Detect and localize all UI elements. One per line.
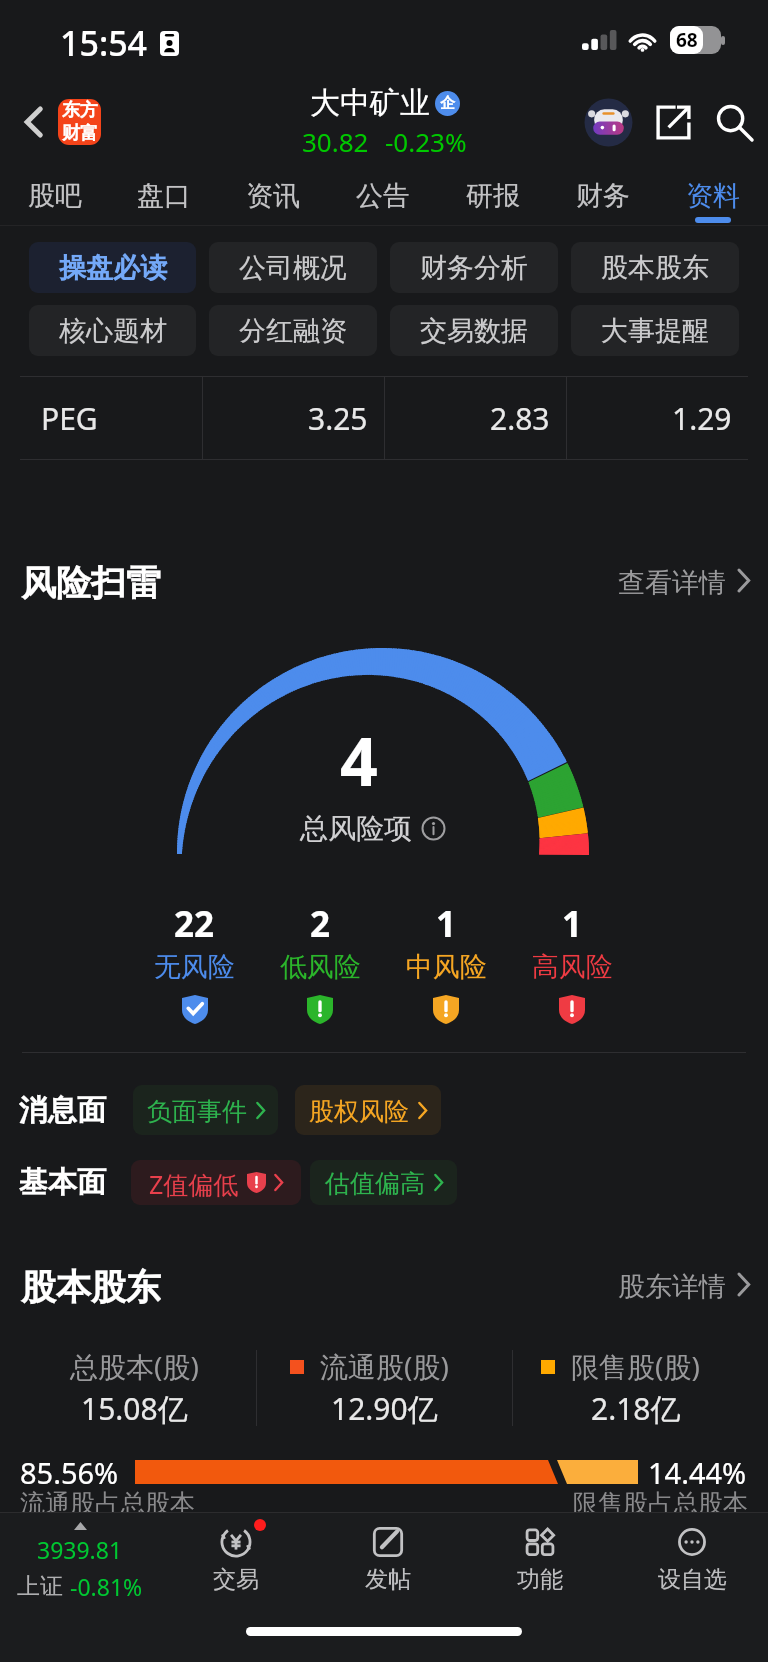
staticText: 功能 [517,1565,563,1594]
staticText: 总风险项 [300,811,412,846]
staticText: 1 [436,900,457,948]
staticText: 股本股东 [601,251,709,285]
staticText: 1.29 [672,398,732,439]
staticText: 公告 [356,179,410,213]
staticText: 财务 [576,179,630,213]
staticText: 发帖 [365,1565,411,1594]
button[interactable]: 财务 [548,164,658,226]
staticText: 交易数据 [420,314,528,348]
button[interactable]: 1 [383,900,509,1024]
staticText: 分红融资 [239,314,347,348]
staticText: 研报 [466,179,520,213]
staticText: 上证 [17,1572,63,1601]
staticText: 股本股东 [21,1265,161,1309]
button[interactable]: 分红融资 [209,305,377,356]
staticText: 15:54 [60,20,148,66]
staticText: 22 [174,900,215,948]
staticText: 核心题材 [59,314,167,348]
button[interactable]: Search [708,96,760,148]
staticText: 低风险 [280,950,361,984]
button[interactable]: 2 [257,900,383,1024]
button[interactable]: 股权风险 [295,1085,441,1135]
staticText: 3.25 [308,398,368,439]
staticText: 总股本(股) [70,1347,199,1385]
staticText: 股权风险 [309,1096,409,1127]
staticText: 流通股占总股本 [20,1488,195,1519]
button[interactable]: 公告 [328,164,438,226]
staticText: -0.81% [70,1571,143,1602]
button[interactable]: 1 [509,900,635,1024]
button[interactable]: 估值偏高 [310,1160,457,1205]
staticText: 消息面 [19,1092,106,1129]
button[interactable]: 财务分析 [390,242,558,293]
staticText: 限售股(股) [571,1347,700,1385]
staticText: 盘口 [137,179,191,213]
button[interactable]: Share [647,96,699,148]
button[interactable]: 股吧 [0,164,109,226]
staticText: 4 [340,715,378,805]
button[interactable]: 盘口 [109,164,218,226]
button[interactable]: 股东详情 [618,1261,750,1307]
button[interactable]: 负面事件 [133,1085,278,1135]
staticText: 基本面 [19,1164,106,1201]
staticText: 负面事件 [147,1096,247,1127]
staticText: 14.44% [648,1453,747,1492]
staticText: 财务分析 [420,251,528,285]
button[interactable]: 交易数据 [390,305,558,356]
button[interactable]: AI assistant [581,95,635,149]
staticText: Z值偏低 [149,1167,239,1201]
staticText: 2.18亿 [591,1388,681,1429]
button[interactable]: 公司概况 [209,242,377,293]
button[interactable]: 资料 [658,164,768,226]
staticText: 东方 [62,99,98,122]
staticText: 股吧 [28,179,82,213]
staticText: 操盘必读 [59,251,167,285]
staticText: 资讯 [246,179,300,213]
button[interactable]: 功能 [464,1513,616,1606]
staticText: 大中矿业 [310,84,430,122]
staticText: 估值偏高 [325,1168,425,1199]
staticText: 2 [310,900,331,948]
staticText: 流通股(股) [320,1347,449,1385]
staticText: 中风险 [406,950,487,984]
button[interactable]: 查看详情 [618,557,750,603]
staticText: 设自选 [658,1565,727,1594]
button[interactable]: 资讯 [218,164,328,226]
button[interactable]: 发帖 [312,1513,464,1606]
staticText: 大事提醒 [601,314,709,348]
staticText: 68 [676,27,698,53]
staticText: PEG [41,398,98,439]
staticText: 15.08亿 [81,1388,188,1429]
button[interactable]: 研报 [438,164,548,226]
staticText: 限售股占总股本 [573,1488,748,1519]
button[interactable]: 东方 [58,99,101,145]
button[interactable]: 核心题材 [29,305,196,356]
button[interactable]: 操盘必读 [29,242,196,293]
staticText: -0.23% [385,124,467,159]
button[interactable]: 22 [132,900,257,1024]
staticText: 资料 [686,179,740,213]
button[interactable]: 股本股东 [571,242,739,293]
staticText: 无风险 [154,950,235,984]
button[interactable]: 交易 [160,1513,312,1606]
staticText: 风险扫雷 [21,561,161,605]
staticText: 财富 [62,122,98,145]
button[interactable]: 设自选 [616,1513,768,1606]
staticText: 股东详情 [618,1270,726,1304]
button[interactable]: 3939.81 [0,1513,160,1606]
staticText: 高风险 [532,950,613,984]
staticText: 2.83 [490,398,550,439]
staticText: 1 [562,900,583,948]
staticText: 85.56% [20,1453,119,1492]
staticText: 公司概况 [239,251,347,285]
staticText: 12.90亿 [331,1388,438,1429]
staticText: 30.82 [302,124,369,159]
staticText: 交易 [213,1565,259,1594]
staticText: 查看详情 [618,566,726,600]
button[interactable]: 大事提醒 [571,305,739,356]
staticText: 企 [440,94,455,113]
button[interactable]: Z值偏低 [131,1160,301,1205]
staticText: 3939.81 [37,1534,123,1565]
button[interactable]: Back [8,96,60,148]
